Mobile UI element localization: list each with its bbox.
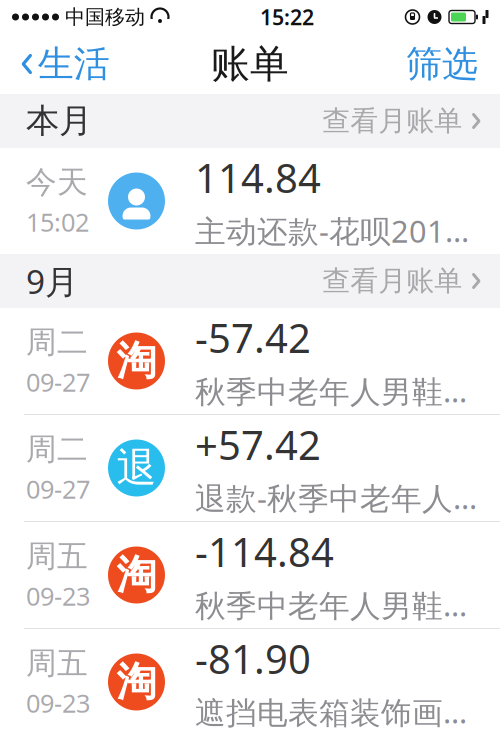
staticText: 退款-秋季中老年人男鞋爸... — [195, 477, 486, 518]
staticText: 淘 — [116, 657, 156, 706]
button[interactable]: 查看月账单 — [310, 96, 480, 146]
button[interactable]: 周二 — [0, 415, 500, 522]
staticText: 主动还款-花呗2016年11月... — [195, 210, 486, 251]
button[interactable]: 筛选 — [392, 36, 492, 92]
staticText: 15:02 — [26, 205, 89, 239]
staticText: 查看月账单 — [322, 264, 462, 298]
staticText: 中国移动 — [65, 5, 145, 29]
button[interactable]: 今天 — [0, 148, 500, 254]
button[interactable]: 周五 — [0, 522, 500, 629]
staticText: 周五 — [26, 537, 88, 575]
staticText: -114.84 — [195, 525, 334, 578]
staticText: 09-27 — [26, 365, 90, 399]
staticText: 9月 — [26, 259, 78, 303]
staticText: 遮挡电表箱装饰画配电箱可... — [195, 691, 486, 732]
staticText: 本月 — [26, 100, 92, 141]
button[interactable]: 查看月账单 — [310, 256, 480, 306]
staticText: 秋季中老年人男鞋爸爸鞋中... — [195, 370, 486, 411]
staticText: 09-23 — [26, 579, 90, 613]
button[interactable]: 周二 — [0, 308, 500, 415]
staticText: 今天 — [26, 163, 88, 201]
staticText: 周二 — [26, 430, 88, 468]
button[interactable]: 周五 — [0, 629, 500, 735]
button[interactable]: 生活 — [8, 36, 124, 92]
staticText: 秋季中老年人男鞋爸爸鞋中... — [195, 584, 486, 625]
staticText: 筛选 — [406, 42, 478, 86]
staticText: +57.42 — [195, 418, 321, 471]
staticText: 15:22 — [260, 3, 314, 31]
staticText: 账单 — [211, 40, 289, 88]
staticText: -57.42 — [195, 311, 311, 364]
staticText: -81.90 — [195, 632, 311, 685]
staticText: 退 — [116, 443, 156, 492]
staticText: 淘 — [116, 550, 156, 599]
staticText: 周二 — [26, 323, 88, 361]
staticText: 114.84 — [195, 151, 321, 204]
staticText: 生活 — [38, 42, 110, 86]
staticText: 09-23 — [26, 686, 90, 720]
staticText: 查看月账单 — [322, 104, 462, 138]
staticText: 淘 — [116, 336, 156, 385]
staticText: 周五 — [26, 644, 88, 682]
staticText: 09-27 — [26, 472, 90, 506]
